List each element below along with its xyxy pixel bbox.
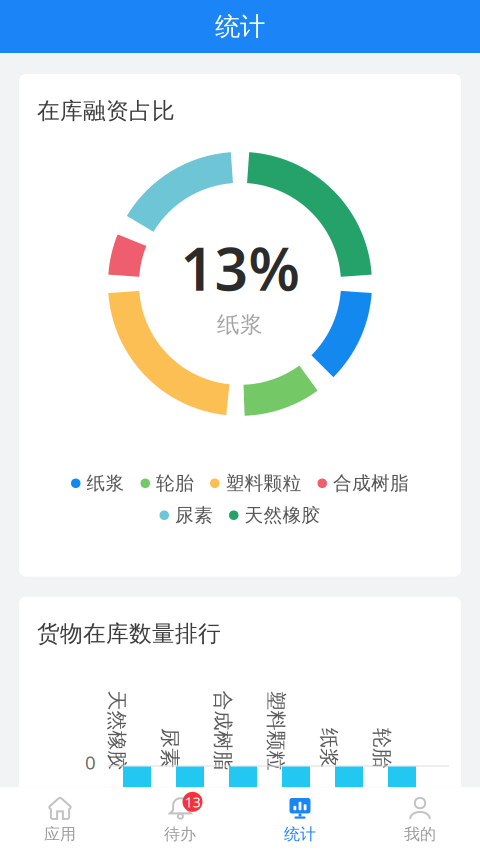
staticText: 轮胎 xyxy=(362,736,402,760)
staticText: 合成树脂 xyxy=(333,472,409,495)
staticText: 应用 xyxy=(44,824,76,844)
staticText: 纸浆 xyxy=(309,736,349,760)
staticText: 天然橡胶 xyxy=(244,504,320,527)
staticText: 13 xyxy=(184,792,200,812)
staticText: 待办 xyxy=(164,824,196,844)
button[interactable]: 统计 xyxy=(240,787,360,853)
staticText: 纸浆 xyxy=(217,311,263,339)
staticText: 统计 xyxy=(284,824,316,844)
staticText: 塑料颗粒 xyxy=(236,718,316,743)
staticText: 货物在库数量排行 xyxy=(37,620,221,647)
staticText: 天然橡胶 xyxy=(77,718,157,743)
staticText: 纸浆 xyxy=(86,472,124,495)
staticText: 尿素 xyxy=(150,736,190,760)
button[interactable]: 13 xyxy=(120,787,240,853)
staticText: 在库融资占比 xyxy=(37,97,175,125)
staticText: 塑料颗粒 xyxy=(225,472,301,495)
button[interactable]: 应用 xyxy=(0,787,120,853)
staticText: 统计 xyxy=(215,11,265,42)
staticText: 合成树脂 xyxy=(183,718,263,743)
staticText: 轮胎 xyxy=(156,472,194,495)
button[interactable]: 我的 xyxy=(360,787,480,853)
staticText: 13% xyxy=(180,229,299,307)
staticText: 0 xyxy=(85,750,96,775)
staticText: 尿素 xyxy=(175,504,213,527)
staticText: 我的 xyxy=(404,824,436,844)
